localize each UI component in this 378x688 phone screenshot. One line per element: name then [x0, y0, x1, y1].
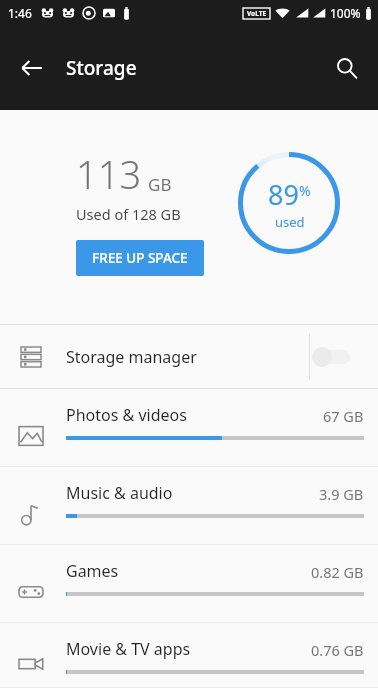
staticText: 67 GB — [323, 406, 364, 426]
staticText: VoLTE — [247, 9, 267, 18]
button[interactable]: FREE UP SPACE — [76, 240, 204, 276]
staticText: 0.82 GB — [311, 562, 364, 582]
staticText: 3.9 GB — [319, 484, 364, 504]
staticText: Used of 128 GB — [76, 204, 181, 224]
button[interactable]: Movie & TV apps — [0, 623, 378, 688]
staticText: 113 — [76, 148, 142, 200]
button[interactable]: Search — [324, 45, 370, 91]
staticText: GB — [148, 173, 172, 196]
staticText: Games — [66, 560, 119, 582]
staticText: 1:46 — [8, 5, 32, 21]
staticText: FREE UP SPACE — [92, 249, 188, 267]
staticText: 100% — [330, 5, 361, 21]
staticText: Storage manager — [66, 346, 197, 368]
staticText: Music & audio — [66, 482, 173, 504]
button[interactable]: Storage manager — [0, 325, 378, 388]
staticText: 89 — [268, 176, 299, 213]
staticText: Photos & videos — [66, 404, 187, 426]
button[interactable]: Music & audio — [0, 467, 378, 545]
staticText: % — [299, 181, 311, 200]
button[interactable]: Back — [10, 46, 54, 90]
staticText: Movie & TV apps — [66, 638, 191, 660]
button[interactable]: Photos & videos — [0, 389, 378, 467]
staticText: used — [275, 213, 305, 231]
button[interactable]: Games — [0, 545, 378, 623]
button[interactable]: Storage manager toggle — [310, 340, 358, 374]
staticText: 0.76 GB — [311, 640, 364, 660]
staticText: Storage — [66, 55, 137, 81]
